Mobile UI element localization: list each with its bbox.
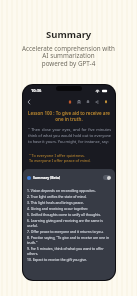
staticText: 7. Offer peace to everyone and it return… <box>27 229 104 234</box>
button[interactable]: Share <box>92 97 101 106</box>
staticText: 5. Unified thoughts come to unify all th… <box>27 212 102 217</box>
staticText: Summary <box>46 28 92 41</box>
button[interactable]: Highlight <box>65 97 74 106</box>
staticText: 1. Vision depends on reconciling opposit… <box>27 188 96 193</box>
button[interactable]: Back <box>24 97 33 106</box>
button[interactable]: Summary (Beta) <box>27 175 111 180</box>
staticText: 8. Practice saying, "To give and to rece… <box>27 235 111 245</box>
staticText: 2. True light unifies the state of mind. <box>27 194 87 199</box>
staticText: 6. Learning giving and receiving are the… <box>27 218 111 228</box>
staticText: 3. This light heals and brings peace. <box>27 200 84 205</box>
staticText: 10. Expect to receive the gift you give. <box>27 257 88 262</box>
staticText: 9. For 5 minutes, think of what you want… <box>27 246 111 256</box>
staticText: Summary (Beta) <box>33 175 61 180</box>
staticText: " Then close your eyes, and for five min… <box>28 127 111 144</box>
staticText: Lesson 100 : To give aid to receive are … <box>25 110 113 122</box>
staticText: 4. Giving and receiving occur together. <box>27 206 88 211</box>
button[interactable]: Account <box>83 97 92 106</box>
staticText: Accelerate comprehension with AI summari… <box>22 44 115 68</box>
button[interactable]: Notes <box>101 97 110 106</box>
button[interactable]: Bookmark <box>74 97 83 106</box>
staticText: " To everyone I offer quietness. To ever… <box>29 153 91 163</box>
staticText: 10:36 <box>31 88 42 93</box>
